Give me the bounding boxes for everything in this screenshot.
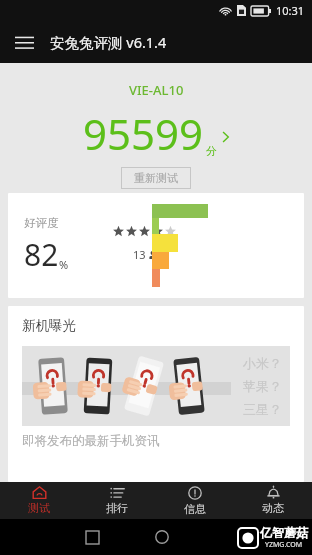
button[interactable]: Menu [8, 26, 40, 58]
staticText: 动态 [262, 501, 284, 515]
button[interactable]: 好评度 [8, 193, 304, 298]
button[interactable]: 动态 [234, 482, 312, 519]
staticText: 小米？ [243, 355, 282, 371]
staticText: 重新测试 [134, 171, 178, 185]
button[interactable]: 重新测试 [121, 167, 191, 189]
staticText: 好评度 [24, 216, 59, 230]
staticText: 即将发布的最新手机资讯 [22, 433, 160, 449]
staticText: 安兔兔评测 v6.1.4 [50, 32, 167, 52]
staticText: 信息 [184, 502, 206, 516]
staticText: 测试 [28, 501, 50, 515]
button[interactable]: 新机曝光 [8, 306, 304, 482]
staticText: YZMG.COM [265, 540, 303, 550]
staticText: 排行 [106, 501, 128, 515]
staticText: 苹果？ [243, 378, 282, 394]
button[interactable]: 95599 [83, 105, 229, 162]
button[interactable]: 测试 [0, 482, 78, 519]
button[interactable]: Home [150, 525, 174, 549]
staticText: 分 [206, 144, 217, 158]
staticText: 95599 [83, 105, 204, 162]
staticText: % [59, 257, 69, 272]
button[interactable]: 信息 [156, 482, 234, 519]
button[interactable]: 排行 [78, 482, 156, 519]
staticText: VIE-AL10 [129, 81, 184, 99]
staticText: 三星？ [243, 401, 282, 417]
staticText: 新机曝光 [22, 317, 76, 334]
staticText: 10:31 [276, 3, 305, 18]
button[interactable]: Recents [80, 525, 104, 549]
staticText: 82 [24, 234, 59, 275]
staticText: 亿智蘑菇 [260, 525, 308, 540]
staticText: 13 [133, 247, 146, 262]
